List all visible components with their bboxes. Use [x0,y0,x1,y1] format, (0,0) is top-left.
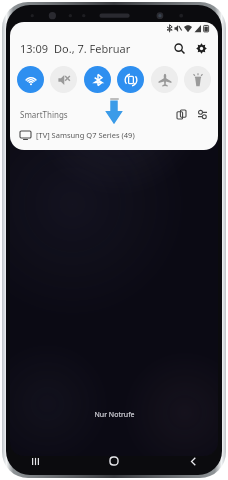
button[interactable]: Recents [22,452,48,470]
staticText: Do., 7. Februar [54,41,131,56]
button[interactable]: Devices [174,107,189,122]
staticText: Nur Notrufe [94,410,135,420]
button[interactable]: Home [101,452,127,470]
button[interactable]: Airplane mode [151,66,178,93]
button[interactable]: Mute [50,66,77,93]
button[interactable]: Flashlight [184,66,211,93]
button[interactable]: [TV] Samsung Q7 Series (49) [10,127,218,143]
button[interactable]: Auto rotate [117,66,144,93]
button[interactable]: Bluetooth [84,66,111,93]
button[interactable]: SmartThings [20,109,68,120]
button[interactable]: Back [180,452,206,470]
button[interactable]: Settings [192,39,210,57]
button[interactable]: Search [170,39,188,57]
button[interactable]: Quick settings options [195,107,210,122]
button[interactable]: Wi-Fi [17,66,44,93]
staticText: [TV] Samsung Q7 Series (49) [36,130,135,140]
staticText: 13:09 [20,41,49,56]
